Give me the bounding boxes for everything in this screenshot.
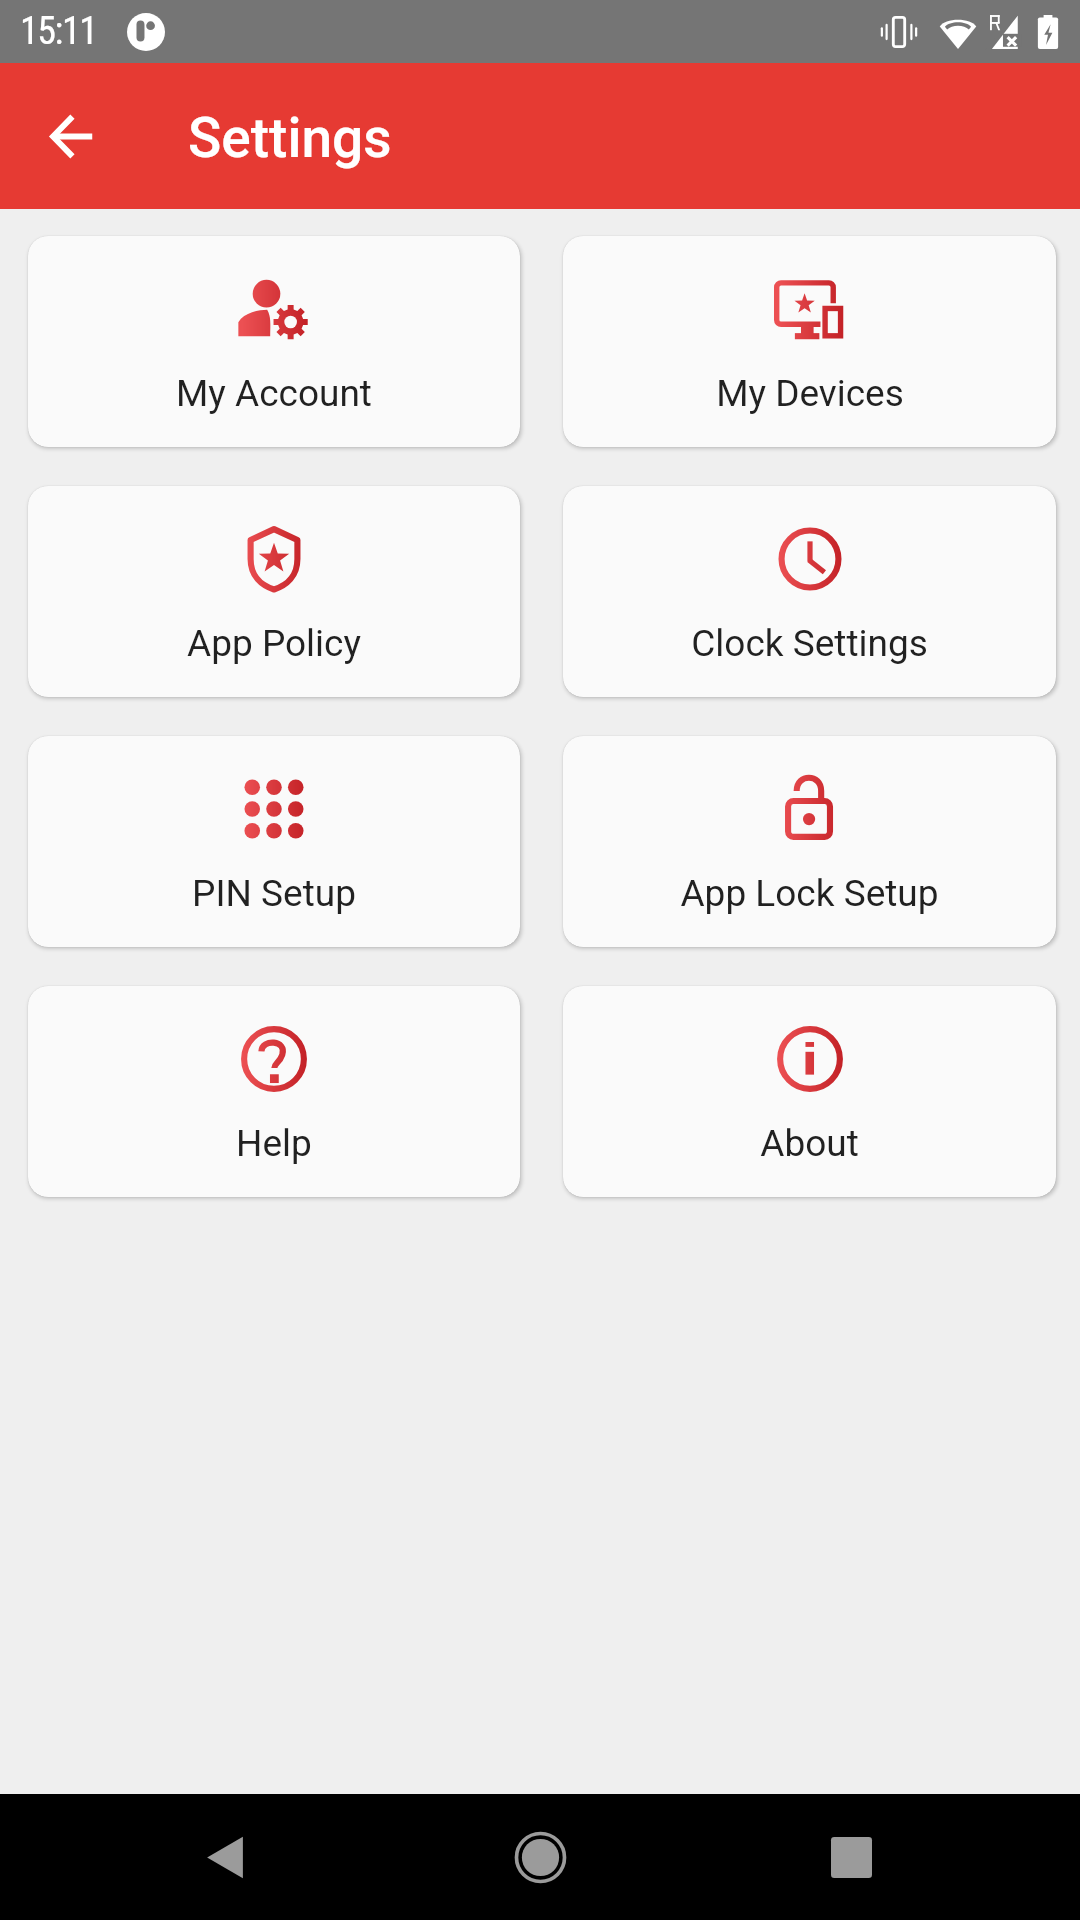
staticText: Clock Settings (691, 622, 928, 665)
staticText: PIN Setup (192, 872, 356, 915)
button[interactable]: App Lock Setup (563, 736, 1056, 947)
button[interactable]: Back (22, 86, 122, 186)
staticText: My Devices (716, 372, 904, 415)
button[interactable]: Recent apps (801, 1807, 901, 1907)
staticText: App Policy (187, 622, 361, 665)
staticText: Help (236, 1122, 312, 1165)
button[interactable]: My Devices (563, 236, 1056, 447)
button[interactable]: Clock Settings (563, 486, 1056, 697)
button[interactable]: Home (490, 1807, 590, 1907)
button[interactable]: About (563, 986, 1056, 1197)
button[interactable]: PIN Setup (28, 736, 520, 947)
button[interactable]: App Policy (28, 486, 520, 697)
staticText: My Account (176, 372, 372, 415)
staticText: Settings (188, 106, 392, 170)
staticText: App Lock Setup (680, 872, 939, 915)
button[interactable]: My Account (28, 236, 520, 447)
button[interactable]: Help (28, 986, 520, 1197)
staticText: About (760, 1122, 859, 1165)
staticText: 15:11 (20, 9, 97, 54)
button[interactable]: Back (175, 1807, 275, 1907)
